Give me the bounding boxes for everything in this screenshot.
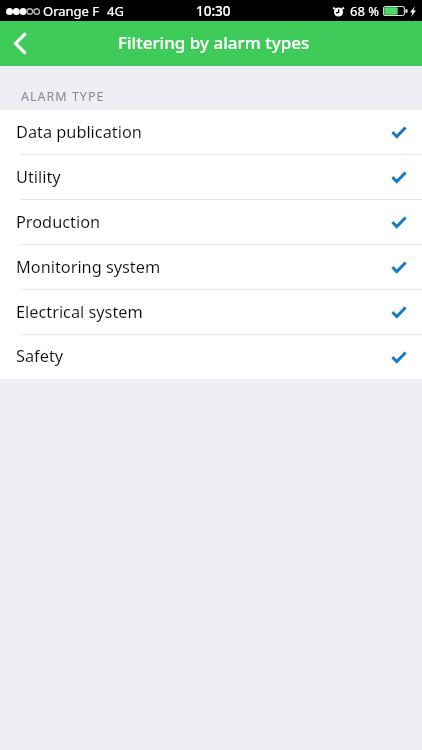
staticText: Data publication [16,121,142,143]
button[interactable]: Safety [0,335,422,379]
staticText: Electrical system [16,301,143,323]
staticText: Production [16,211,101,233]
button[interactable]: Monitoring system [0,245,422,290]
button[interactable]: Data publication [0,110,422,155]
button[interactable]: Electrical system [0,290,422,335]
staticText: Utility [16,166,61,188]
staticText: Filtering by alarm types [118,31,310,54]
button[interactable]: Back [0,21,46,66]
staticText: Orange F [43,2,100,20]
staticText: Monitoring system [16,256,161,278]
button[interactable]: Utility [0,155,422,200]
staticText: 68 % [350,2,380,20]
staticText: 4G [107,2,124,20]
staticText: ALARM TYPE [21,88,105,105]
staticText: Safety [16,345,64,367]
button[interactable]: Production [0,200,422,245]
staticText: 10:30 [196,2,231,20]
